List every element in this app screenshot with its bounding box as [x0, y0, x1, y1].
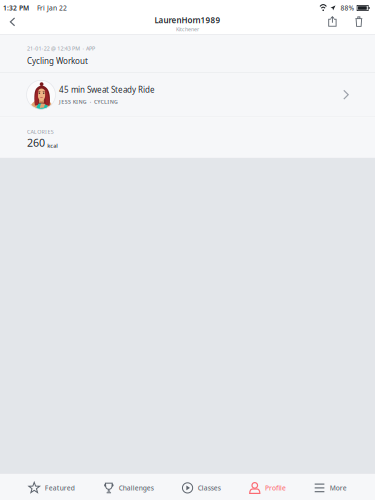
button[interactable]: Classes	[182, 478, 221, 498]
button[interactable]: Share	[320, 13, 347, 30]
staticText: Fri Jan 22	[37, 4, 67, 12]
button[interactable]: Challenges	[103, 478, 154, 498]
staticText: 88%	[340, 4, 354, 12]
staticText: 45 min Sweat Steady Ride	[59, 84, 155, 95]
staticText: Cycling Workout	[27, 56, 88, 66]
staticText: CALORIES	[27, 128, 54, 135]
button[interactable]: Back	[0, 13, 25, 30]
staticText: 260	[27, 135, 45, 150]
staticText: Profile	[265, 483, 286, 492]
staticText: kcal	[47, 142, 58, 149]
button[interactable]: 45 min Sweat Steady Ride	[0, 73, 375, 116]
staticText: Kitchener	[176, 26, 199, 33]
staticText: LaurenHorn1989	[154, 15, 220, 25]
staticText: 1:32 PM	[3, 4, 29, 12]
button[interactable]: Featured	[28, 478, 75, 498]
staticText: Classes	[198, 483, 221, 492]
staticText: More	[330, 483, 347, 492]
button[interactable]: Profile	[249, 478, 286, 498]
button[interactable]: More	[314, 479, 347, 497]
staticText: Challenges	[119, 483, 154, 492]
staticText: Featured	[45, 483, 75, 492]
button[interactable]: Delete	[347, 13, 375, 30]
staticText: JESS KING · CYCLING	[59, 98, 118, 105]
staticText: 21-01-22 @ 12:43 PM · APP	[27, 45, 95, 52]
